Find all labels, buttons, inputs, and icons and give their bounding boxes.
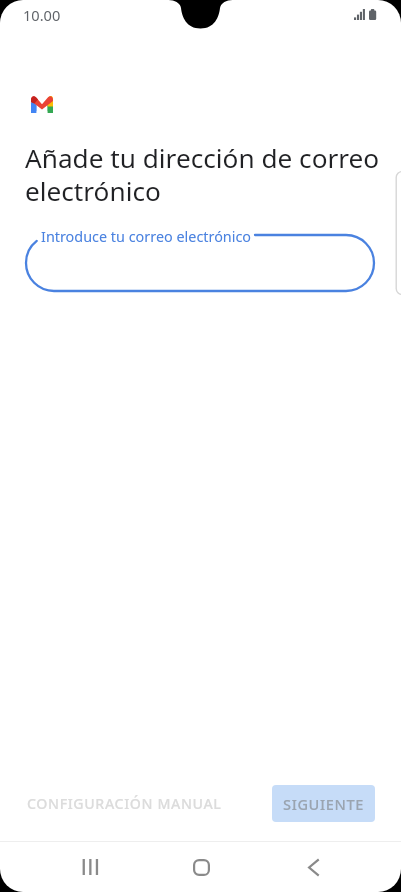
button[interactable]: SIGUIENTE [272, 785, 375, 822]
button[interactable]: Home [173, 845, 230, 889]
staticText: CONFIGURACIÓN MANUAL [27, 794, 222, 813]
staticText: SIGUIENTE [283, 794, 364, 814]
button[interactable]: Recent apps [61, 845, 118, 889]
staticText: 10.00 [23, 5, 61, 25]
button[interactable]: CONFIGURACIÓN MANUAL [19, 785, 230, 822]
staticText: Añade tu dirección de correo electrónico [25, 140, 385, 209]
staticText: Introduce tu correo electrónico [41, 227, 252, 247]
button[interactable]: Back [285, 845, 342, 889]
button[interactable]: Introduce tu correo electrónico [26, 235, 374, 291]
